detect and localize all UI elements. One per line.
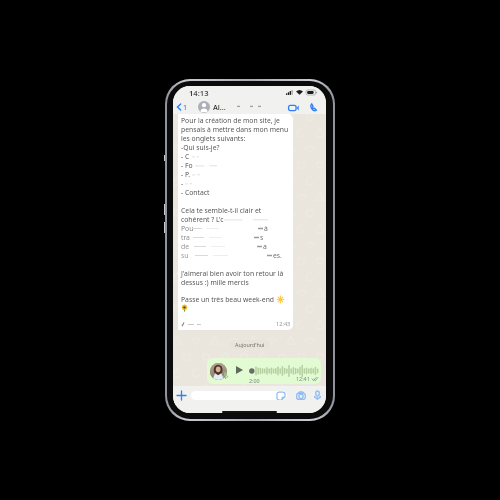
staticText: 14:13: [189, 88, 209, 98]
staticText: dessus :) mille mercis: [181, 278, 249, 287]
staticText: pensais à mettre dans mon menu: [181, 125, 289, 134]
button[interactable]: [191, 391, 287, 400]
staticText: - Fo: [181, 161, 193, 170]
staticText: Aujourd'hui: [235, 341, 265, 348]
staticText: 1: [183, 102, 188, 112]
staticText: -Qui suis-je?: [181, 143, 220, 152]
staticText: a: [263, 242, 267, 251]
staticText: su: [181, 251, 189, 260]
button[interactable]: Voice message: [309, 389, 326, 402]
staticText: - P.: [181, 170, 191, 179]
staticText: Pour la création de mon site, je: [181, 116, 280, 125]
staticText: de: [181, 242, 190, 251]
staticText: à: [264, 224, 268, 233]
staticText: 2:00: [249, 377, 260, 384]
staticText: - Contact: [181, 188, 210, 197]
button[interactable]: Back: [173, 100, 191, 114]
staticText: Passe un très beau week-end: [181, 295, 275, 304]
staticText: -: [181, 179, 185, 188]
staticText: 12:43: [276, 320, 291, 328]
staticText: J'aimerai bien avoir ton retour là: [181, 269, 284, 278]
button[interactable]: Video call: [286, 102, 301, 114]
staticText: 12:41: [296, 375, 310, 382]
staticText: - C: [181, 152, 190, 161]
staticText: Pou: [181, 224, 194, 233]
staticText: s: [260, 233, 264, 242]
button[interactable]: 2:00: [207, 358, 321, 384]
staticText: cohérent ? L'c: [181, 215, 224, 224]
staticText: les onglets suivants:: [181, 134, 246, 143]
button[interactable]: Voice call: [307, 101, 326, 114]
button[interactable]: Al...: [198, 101, 271, 113]
staticText: es.: [273, 251, 282, 260]
button[interactable]: Attach: [173, 388, 188, 403]
button[interactable]: Camera: [290, 389, 307, 402]
staticText: Cela te semble-t-il clair et: [181, 206, 262, 215]
staticText: tra: [181, 233, 190, 242]
staticText: Al...: [213, 102, 226, 112]
